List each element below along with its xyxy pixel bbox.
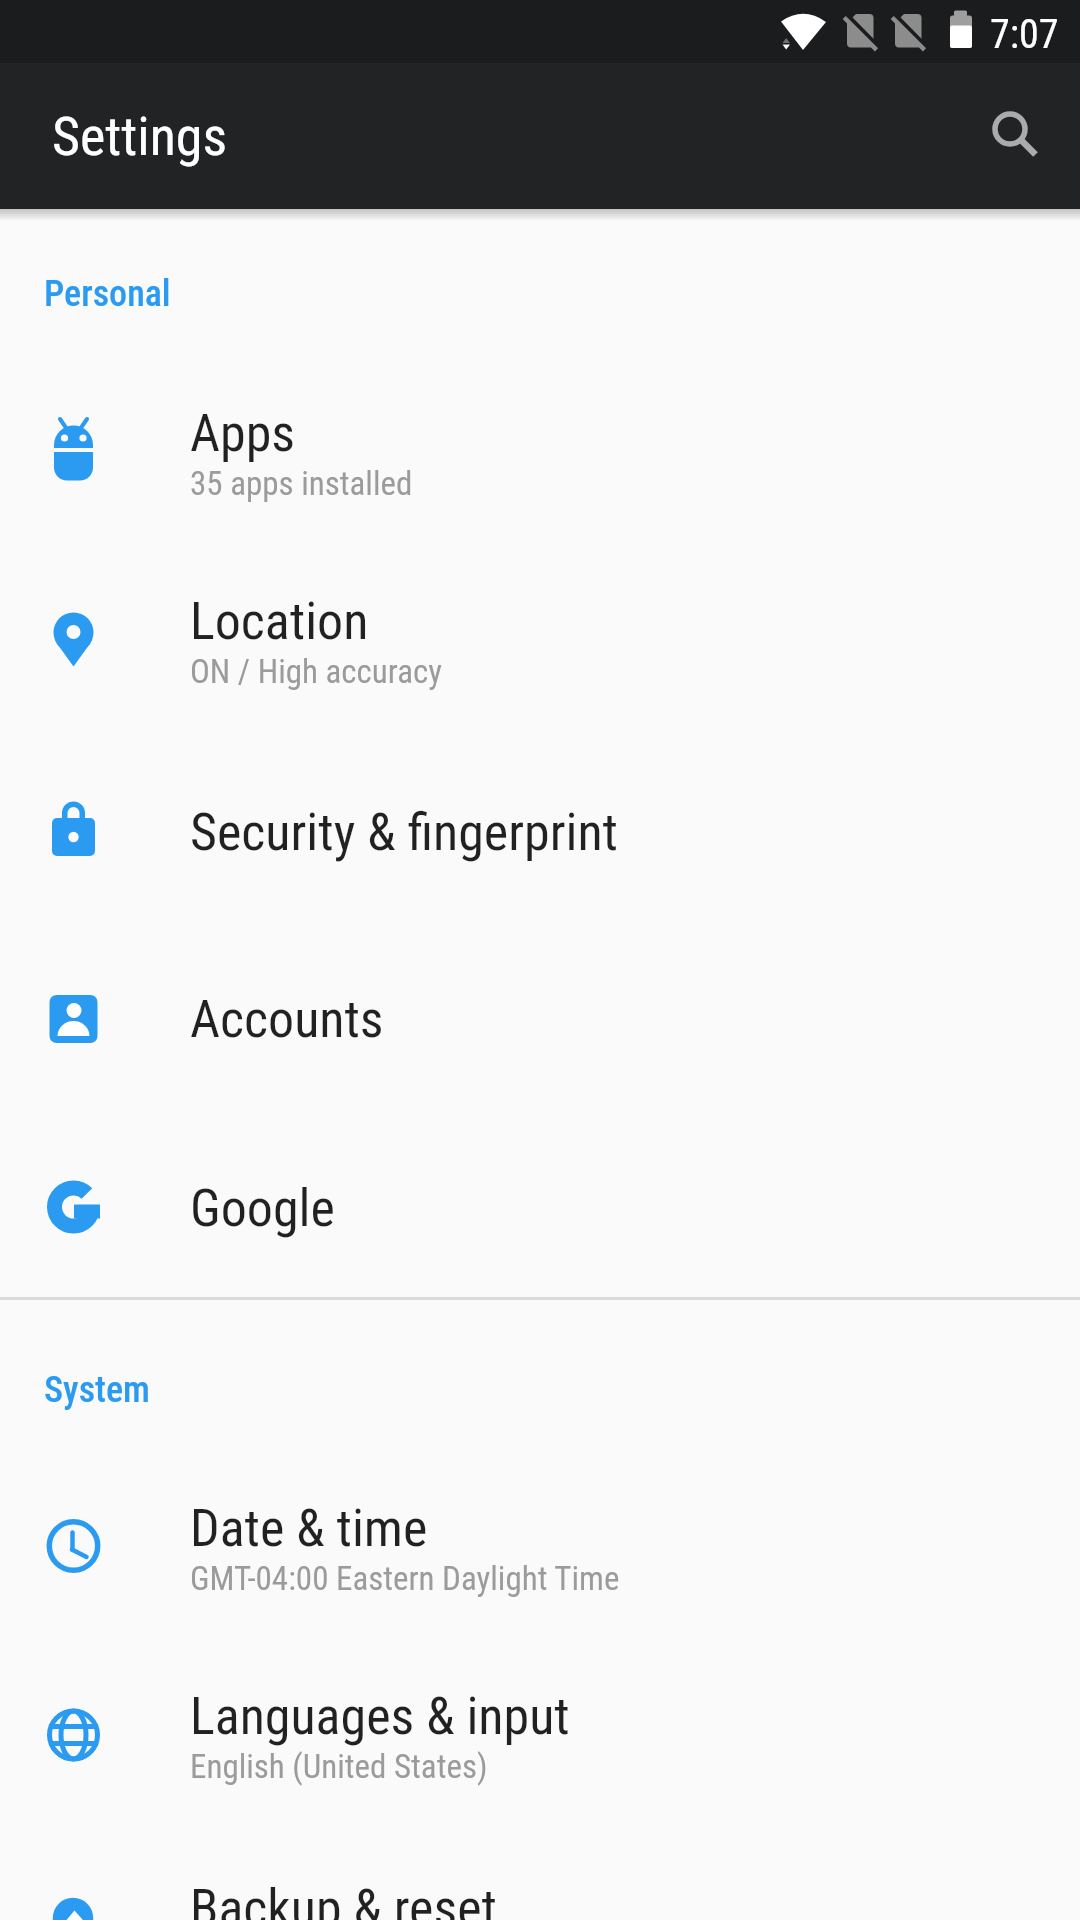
staticText: English (United States) (190, 1747, 488, 1786)
staticText: Personal (44, 273, 171, 315)
staticText: Backup & reset (190, 1878, 497, 1920)
staticText: Security & fingerprint (190, 802, 619, 863)
staticText: ON / High accuracy (190, 652, 442, 691)
button[interactable]: Apps (0, 364, 1080, 552)
staticText: Settings (52, 105, 228, 168)
staticText: GMT-04:00 Eastern Daylight Time (190, 1559, 620, 1598)
button[interactable]: Location (0, 552, 1080, 740)
button[interactable]: Security & fingerprint (0, 738, 1080, 926)
staticText: System (44, 1369, 150, 1411)
button[interactable] (962, 88, 1058, 184)
staticText: Location (190, 591, 369, 652)
button[interactable]: Languages & input (0, 1647, 1080, 1835)
staticText: Google (190, 1178, 335, 1239)
staticText: Apps (190, 403, 295, 464)
staticText: Languages & input (190, 1686, 570, 1747)
staticText: Accounts (190, 989, 384, 1050)
staticText: 35 apps installed (190, 464, 413, 503)
staticText: Date & time (190, 1498, 428, 1559)
button[interactable]: Google (0, 1114, 1080, 1302)
button[interactable]: Backup & reset (0, 1839, 1080, 1920)
button[interactable]: Date & time (0, 1459, 1080, 1647)
staticText: 7:07 (990, 11, 1059, 58)
button[interactable]: Accounts (0, 925, 1080, 1113)
